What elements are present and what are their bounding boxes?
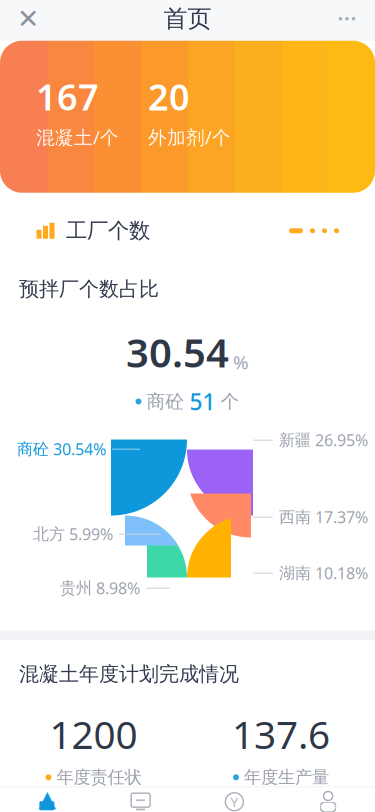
button[interactable]: 工厂个数 [18, 208, 357, 254]
staticText: 8.98% [96, 577, 140, 599]
staticText: 17.37% [315, 506, 368, 528]
staticText: 1200 [49, 708, 137, 760]
button[interactable]: More [325, 0, 369, 41]
staticText: 工厂个数 [66, 218, 150, 244]
staticText: 个 [220, 390, 239, 413]
staticText: 预拌厂个数占比 [19, 277, 159, 301]
staticText: 首页 [163, 4, 211, 33]
staticText: 湖南 [279, 563, 311, 583]
staticText: Y [230, 793, 238, 811]
staticText: 新疆 [279, 430, 311, 450]
staticText: 10.18% [315, 562, 368, 584]
staticText: 外加剂/个 [148, 125, 231, 149]
staticText: 年度生产量 [244, 767, 329, 788]
staticText: 51 [189, 386, 215, 416]
button[interactable]: ▲ [0, 788, 94, 812]
staticText: 20 [148, 73, 190, 121]
staticText: 西南 [279, 507, 311, 527]
staticText: 商砼 [17, 439, 49, 459]
staticText: ✕ [17, 4, 39, 34]
staticText: 北方 [33, 524, 65, 544]
staticText: 167 [36, 73, 99, 121]
staticText: % [233, 350, 249, 374]
staticText: 年度责任状 [56, 767, 141, 788]
staticText: ▲ [38, 786, 55, 812]
button[interactable]: 我的 [281, 788, 375, 812]
button[interactable]: Y [187, 788, 281, 812]
staticText: 137.6 [232, 708, 330, 760]
staticText: 商砼 [146, 390, 184, 413]
button[interactable]: Close [6, 0, 50, 41]
staticText: 混凝土年度计划完成情况 [19, 662, 239, 686]
staticText: 26.95% [315, 429, 368, 451]
staticText: 30.54 [126, 325, 229, 378]
staticText: 混凝土/个 [36, 125, 119, 149]
staticText: 30.54% [53, 438, 106, 460]
staticText: 5.99% [69, 523, 113, 545]
button[interactable]: 智慧看板 [94, 788, 188, 812]
staticText: 贵州 [60, 578, 92, 598]
